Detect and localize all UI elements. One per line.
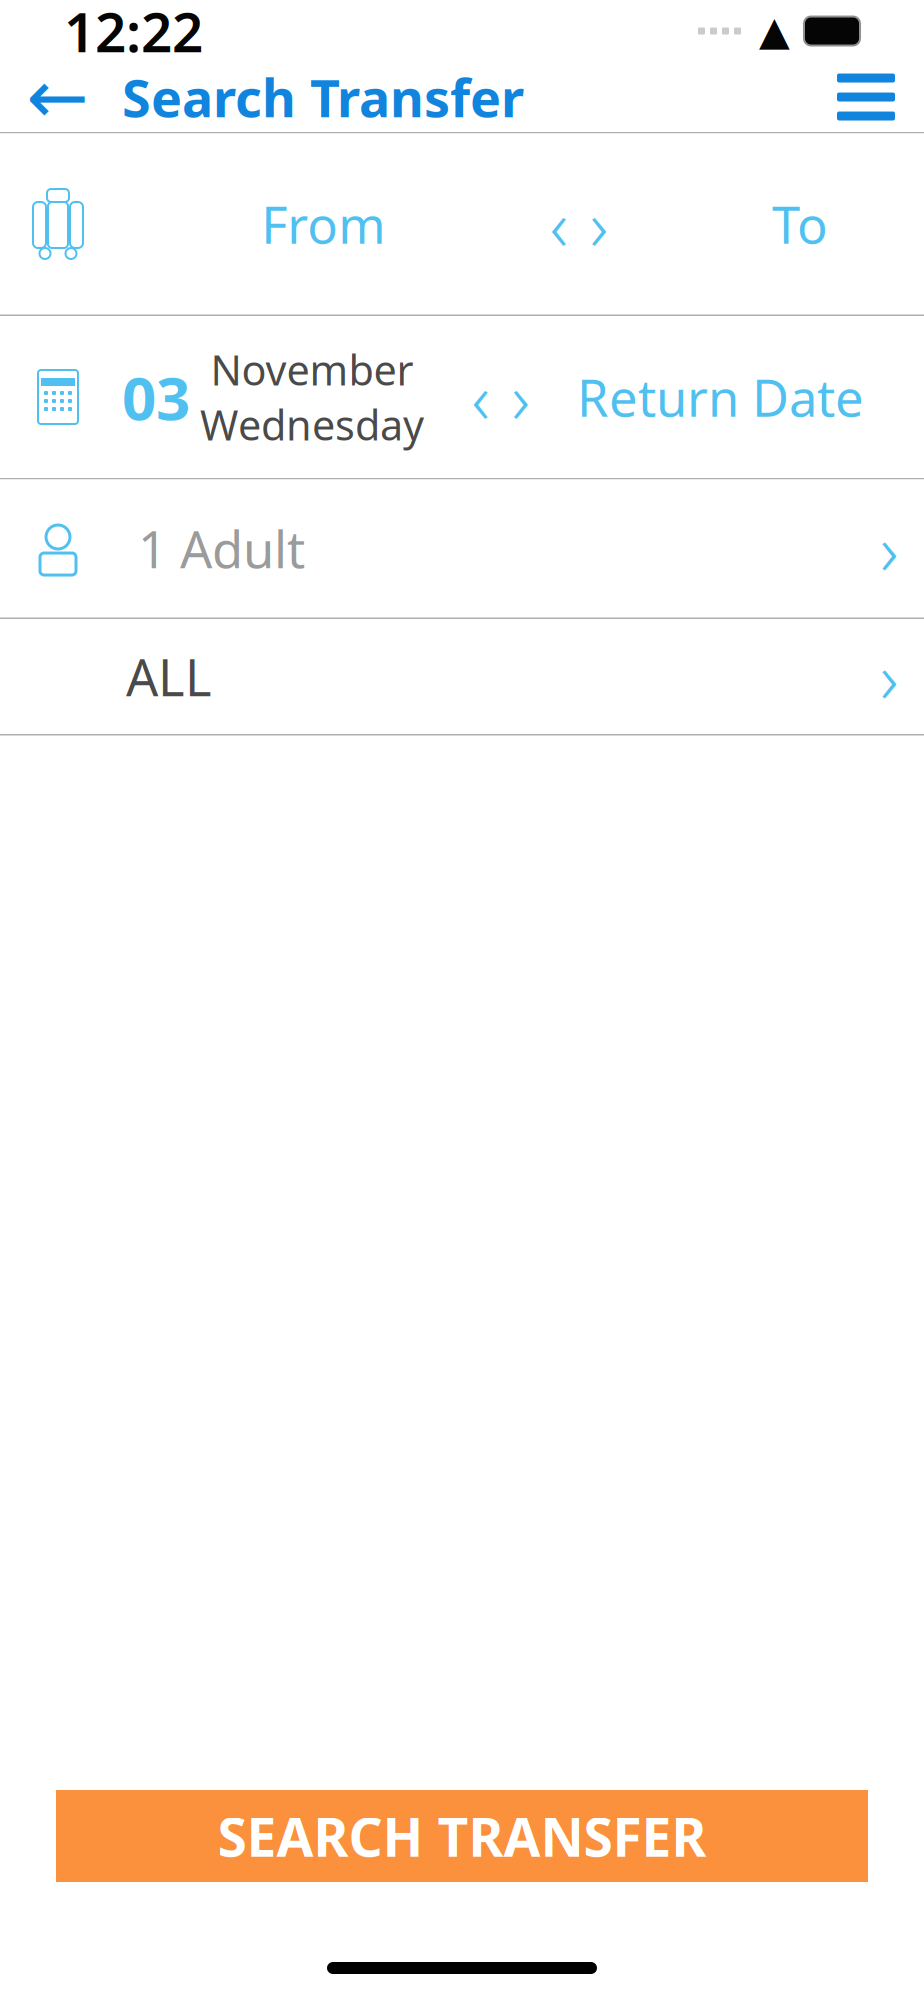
button[interactable]: Previous: [464, 367, 496, 427]
staticText: ←: [26, 55, 89, 139]
staticText: 1 Adult: [138, 515, 305, 582]
staticText: ‹: [471, 351, 489, 443]
staticText: ALL: [126, 643, 212, 710]
staticText: ›: [590, 178, 608, 270]
staticText: Search Transfer: [122, 62, 524, 132]
staticText: Return Date: [577, 363, 864, 431]
staticText: ›: [880, 630, 898, 723]
staticText: ›: [511, 351, 529, 443]
button[interactable]: ALL: [0, 619, 924, 734]
button[interactable]: 1 Adult: [0, 479, 924, 617]
button[interactable]: Search Transfer: [122, 62, 524, 132]
button[interactable]: Next: [583, 194, 615, 254]
staticText: From: [261, 190, 385, 258]
staticText: 03: [122, 357, 190, 437]
staticText: ‹: [550, 178, 568, 270]
staticText: Wednesday: [200, 397, 424, 452]
button[interactable]: Menu: [828, 63, 904, 131]
staticText: ▲: [759, 8, 790, 54]
staticText: ›: [880, 502, 898, 595]
button[interactable]: From: [0, 133, 924, 314]
staticText: SEARCH TRANSFER: [217, 1801, 706, 1871]
button[interactable]: 03: [0, 316, 924, 478]
button[interactable]: Back: [20, 63, 96, 131]
staticText: November: [210, 342, 413, 397]
staticText: To: [772, 190, 828, 258]
button[interactable]: Previous: [543, 194, 575, 254]
button[interactable]: Next: [504, 367, 536, 427]
button[interactable]: SEARCH TRANSFER: [56, 1790, 868, 1882]
staticText: 12:22: [64, 0, 203, 67]
